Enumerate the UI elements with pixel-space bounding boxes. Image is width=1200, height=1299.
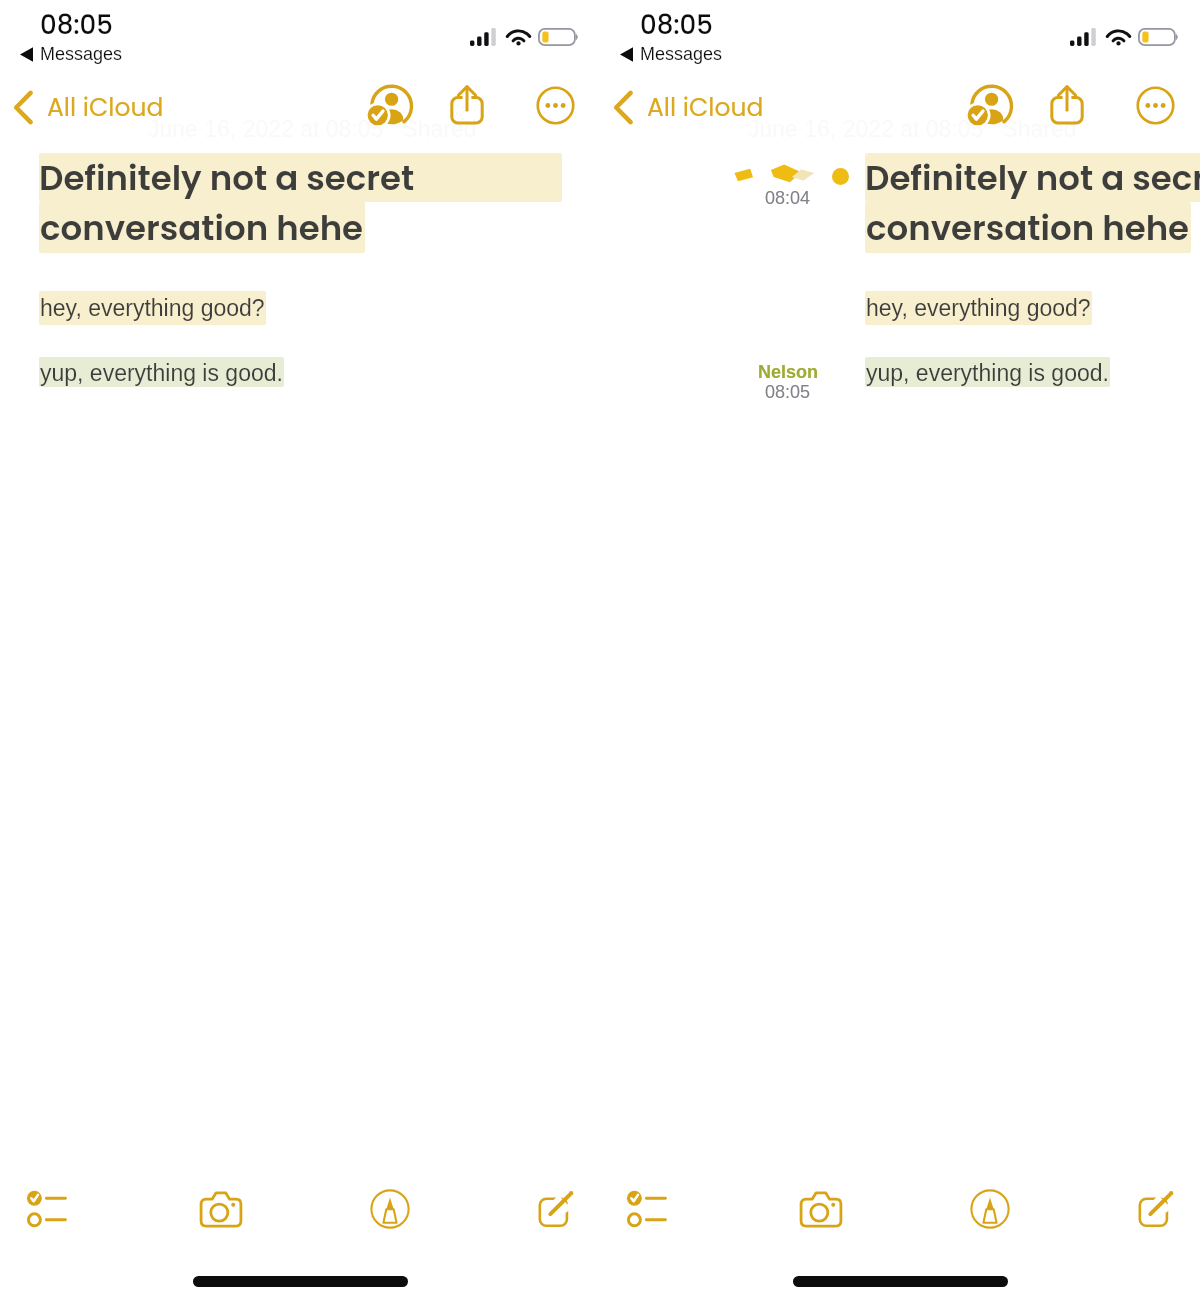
staticText: hey, everything good? [40, 295, 265, 321]
staticText: conversation hehe [866, 204, 1190, 252]
button[interactable]: Share [439, 76, 495, 132]
staticText: June 16, 2022 at 08:05 Shared [148, 116, 477, 142]
staticText: Messages [40, 44, 123, 64]
staticText: Nelson [758, 362, 819, 382]
button[interactable]: More options [527, 77, 583, 133]
button[interactable]: Collaborate [961, 79, 1017, 135]
button[interactable]: Camera [190, 1178, 252, 1240]
button[interactable]: Checklist [619, 1178, 681, 1240]
staticText: conversation hehe [40, 204, 364, 252]
staticText: 08:04 [765, 188, 811, 208]
button[interactable]: New note [1125, 1178, 1187, 1240]
staticText: All iCloud [47, 90, 164, 125]
staticText: June 16, 2022 at 08:05 Shared [748, 116, 1077, 142]
staticText: Definitely not a secret [865, 154, 1200, 202]
button[interactable]: Markup [959, 1178, 1021, 1240]
button[interactable]: All iCloud [600, 85, 774, 130]
button[interactable]: Share [1039, 76, 1095, 132]
button[interactable]: Collaborate [361, 79, 417, 135]
button[interactable]: Camera [790, 1178, 852, 1240]
button[interactable]: New note [525, 1178, 587, 1240]
staticText: 08:05 [765, 382, 811, 402]
staticText: 08:05 [640, 7, 713, 34]
staticText: hey, everything good? [866, 295, 1091, 321]
button[interactable]: More options [1127, 77, 1183, 133]
button[interactable]: All iCloud [0, 85, 174, 130]
button[interactable]: Checklist [19, 1178, 81, 1240]
button[interactable]: Markup [359, 1178, 421, 1240]
staticText: yup, everything is good. [866, 360, 1109, 386]
staticText: 08:05 [40, 7, 113, 34]
staticText: Messages [640, 44, 723, 64]
staticText: Definitely not a secret [39, 154, 415, 202]
staticText: yup, everything is good. [40, 360, 283, 386]
staticText: All iCloud [647, 90, 764, 125]
